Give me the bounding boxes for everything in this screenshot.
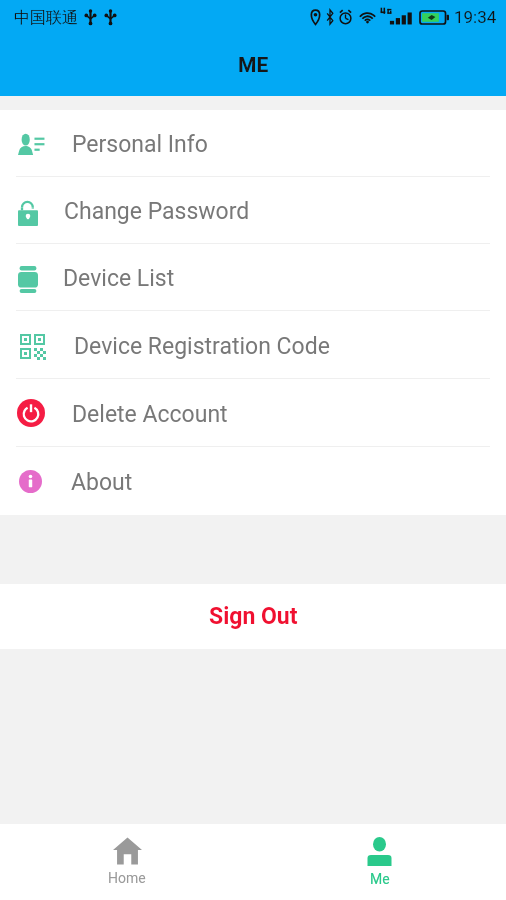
staticText: Device Registration Code — [74, 333, 330, 360]
staticText: Sign Out — [209, 603, 298, 630]
staticText: Personal Info — [72, 131, 208, 158]
staticText: 中国联通 — [14, 8, 78, 28]
staticText: About — [71, 469, 133, 496]
button[interactable]: Change Password — [0, 177, 506, 244]
button[interactable]: Personal Info — [0, 110, 506, 177]
button[interactable]: Device Registration Code — [0, 311, 506, 379]
staticText: Change Password — [64, 198, 250, 225]
button[interactable]: Device List — [0, 244, 506, 311]
button[interactable]: Me — [253, 824, 506, 900]
button[interactable]: Home — [0, 824, 253, 900]
button[interactable]: About — [0, 447, 506, 515]
staticText: Me — [370, 871, 390, 887]
button[interactable]: Sign Out — [0, 584, 506, 649]
staticText: ME — [238, 53, 269, 78]
staticText: 19:34 — [454, 7, 497, 27]
staticText: Device List — [63, 265, 175, 292]
button[interactable]: Delete Account — [0, 379, 506, 447]
staticText: Home — [108, 870, 146, 886]
staticText: Delete Account — [72, 401, 228, 428]
